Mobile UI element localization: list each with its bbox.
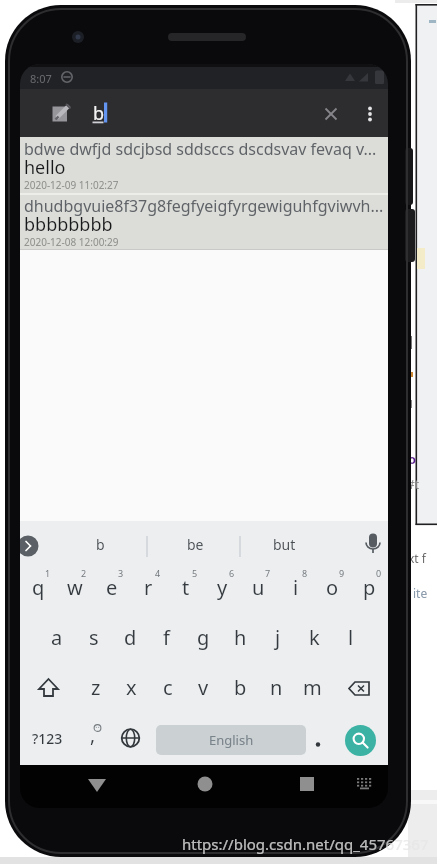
staticText: 9 — [339, 567, 345, 579]
button[interactable] — [356, 526, 388, 560]
staticText: w — [67, 574, 83, 601]
staticText: o — [408, 450, 417, 468]
staticText: 1 — [45, 567, 51, 579]
staticText: English — [209, 731, 254, 749]
staticText: f — [163, 624, 170, 651]
button[interactable] — [331, 665, 388, 715]
staticText: hello — [24, 155, 66, 180]
button[interactable]: i — [277, 565, 314, 615]
button[interactable] — [190, 770, 220, 800]
staticText: e — [106, 574, 118, 601]
button[interactable]: w — [56, 565, 93, 615]
button[interactable]: English — [149, 715, 312, 765]
button[interactable]: d — [112, 615, 149, 665]
staticText: xt f — [408, 550, 426, 566]
button[interactable]: j — [259, 615, 296, 665]
staticText: 8:07 — [30, 71, 52, 86]
staticText: 3 — [118, 567, 124, 579]
button[interactable]: z — [77, 665, 114, 715]
button[interactable] — [292, 770, 322, 800]
staticText: 6 — [229, 567, 235, 579]
staticText: l — [348, 624, 354, 651]
button[interactable]: t — [167, 565, 204, 615]
staticText: bbbbbbbb — [24, 212, 113, 237]
button[interactable]: bdwe dwfjd sdcjbsd sddsccs dscdsvav feva… — [20, 137, 388, 194]
staticText: 7 — [265, 567, 271, 579]
staticText: n — [270, 674, 283, 701]
staticText: 5 — [192, 567, 198, 579]
staticText: r — [144, 574, 153, 601]
button[interactable]: m — [294, 665, 331, 715]
staticText: s — [89, 624, 99, 651]
staticText: 2020-12-08 12:00:29 — [24, 235, 119, 249]
button[interactable]: l — [332, 615, 369, 665]
staticText: b — [234, 674, 247, 701]
staticText: 0 — [376, 567, 382, 579]
staticText: a — [51, 624, 63, 651]
button[interactable]: p — [351, 565, 388, 615]
staticText: 2 — [81, 567, 87, 579]
staticText: ite — [413, 585, 428, 601]
staticText: 4 — [155, 567, 161, 579]
staticText: #t — [407, 476, 420, 492]
button[interactable]: ?123 — [20, 715, 75, 765]
staticText: h — [234, 624, 247, 651]
button[interactable] — [310, 715, 333, 765]
staticText: , — [90, 722, 96, 748]
staticText: c — [163, 674, 173, 701]
staticText: q — [32, 574, 45, 601]
staticText: g — [197, 624, 210, 651]
button[interactable]: b — [60, 529, 140, 559]
staticText: o — [326, 574, 339, 601]
staticText: x — [126, 674, 137, 701]
button[interactable]: h — [222, 615, 259, 665]
button[interactable] — [112, 715, 149, 765]
button[interactable] — [358, 100, 382, 126]
staticText: u — [252, 574, 265, 601]
staticText: be — [187, 535, 204, 554]
staticText: p — [363, 574, 376, 601]
button[interactable] — [20, 665, 77, 715]
staticText: but — [273, 535, 296, 554]
button[interactable]: but — [249, 529, 319, 559]
button[interactable]: n — [258, 665, 295, 715]
button[interactable]: r — [130, 565, 167, 615]
staticText: dhudbgvuie8f37g8fegfyeigfyrgewiguhfgviwv… — [24, 195, 384, 217]
button[interactable] — [318, 100, 344, 126]
staticText: t — [182, 574, 190, 601]
button[interactable]: e — [93, 565, 130, 615]
button[interactable]: q — [20, 565, 57, 615]
button[interactable] — [51, 103, 71, 123]
button[interactable]: v — [185, 665, 222, 715]
button[interactable]: dhudbgvuie8f37g8fegfyeigfyrgewiguhfgviwv… — [20, 195, 388, 250]
button[interactable]: g — [185, 615, 222, 665]
button[interactable]: c — [149, 665, 186, 715]
button[interactable]: y — [204, 565, 241, 615]
staticText: y — [217, 574, 228, 601]
staticText: z — [91, 674, 101, 701]
button[interactable]: be — [160, 529, 230, 559]
staticText: b — [93, 101, 105, 126]
button[interactable]: , — [75, 715, 112, 765]
button[interactable]: f — [148, 615, 185, 665]
button[interactable] — [82, 770, 112, 800]
button[interactable]: s — [75, 615, 112, 665]
staticText: i — [293, 574, 299, 601]
staticText: k — [309, 624, 320, 651]
button[interactable]: k — [296, 615, 333, 665]
button[interactable]: b — [222, 665, 259, 715]
button[interactable]: a — [38, 615, 75, 665]
staticText: d — [124, 624, 137, 651]
staticText: b — [96, 535, 105, 554]
staticText: https://blog.csdn.net/qq_45767367 — [182, 834, 429, 854]
staticText: v — [198, 674, 209, 701]
staticText: j — [275, 624, 281, 651]
staticText: ?123 — [32, 729, 63, 748]
button[interactable]: x — [113, 665, 150, 715]
staticText: 2020-12-09 11:02:27 — [24, 178, 119, 192]
staticText: 8 — [302, 567, 308, 579]
button[interactable] — [333, 715, 388, 765]
staticText: bdwe dwfjd sdcjbsd sddsccs dscdsvav feva… — [24, 138, 377, 160]
button[interactable]: o — [314, 565, 351, 615]
button[interactable]: u — [240, 565, 277, 615]
